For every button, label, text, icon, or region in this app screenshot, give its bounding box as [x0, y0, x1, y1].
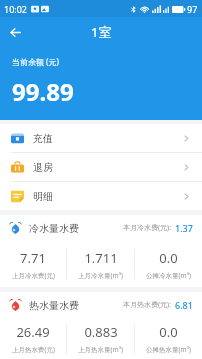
staticText: 充值 — [33, 132, 53, 145]
staticText: 6.81 — [175, 299, 193, 311]
button[interactable]: 明细 — [0, 182, 202, 210]
staticText: 1.37 — [175, 222, 193, 234]
button[interactable]: 返回 — [0, 17, 30, 47]
staticText: 公摊热水量(m³) — [146, 345, 191, 354]
staticText: 0.0 — [159, 323, 178, 341]
staticText: 0.0 — [159, 249, 178, 267]
staticText: 上月冷水费(元) — [12, 271, 55, 280]
staticText: 公摊冷水量(m³) — [146, 271, 191, 280]
staticText: 明细 — [33, 190, 53, 203]
staticText: 热水量水费 — [29, 299, 79, 312]
staticText: 7.71 — [20, 249, 46, 267]
staticText: 本月冷水费(元): — [123, 223, 172, 233]
staticText: 26.49 — [16, 323, 50, 341]
staticText: 1室 — [91, 23, 112, 41]
staticText: 1.711 — [84, 249, 118, 267]
staticText: 上月热水量(m³) — [78, 345, 123, 354]
staticText: 99.89 — [12, 75, 74, 108]
button[interactable]: 充值 — [0, 124, 202, 152]
staticText: 上月热水费(元) — [12, 345, 55, 354]
staticText: 0.883 — [84, 323, 118, 341]
staticText: 上月冷水量(m³) — [78, 271, 123, 280]
staticText: 当前余额 (元) — [12, 56, 59, 67]
staticText: 退房 — [33, 161, 53, 174]
staticText: 97 — [187, 3, 198, 15]
staticText: 10:02 — [4, 3, 28, 15]
staticText: 本月热水费(元): — [123, 300, 172, 310]
button[interactable]: 退房 — [0, 153, 202, 181]
staticText: 冷水量水费 — [29, 222, 79, 235]
